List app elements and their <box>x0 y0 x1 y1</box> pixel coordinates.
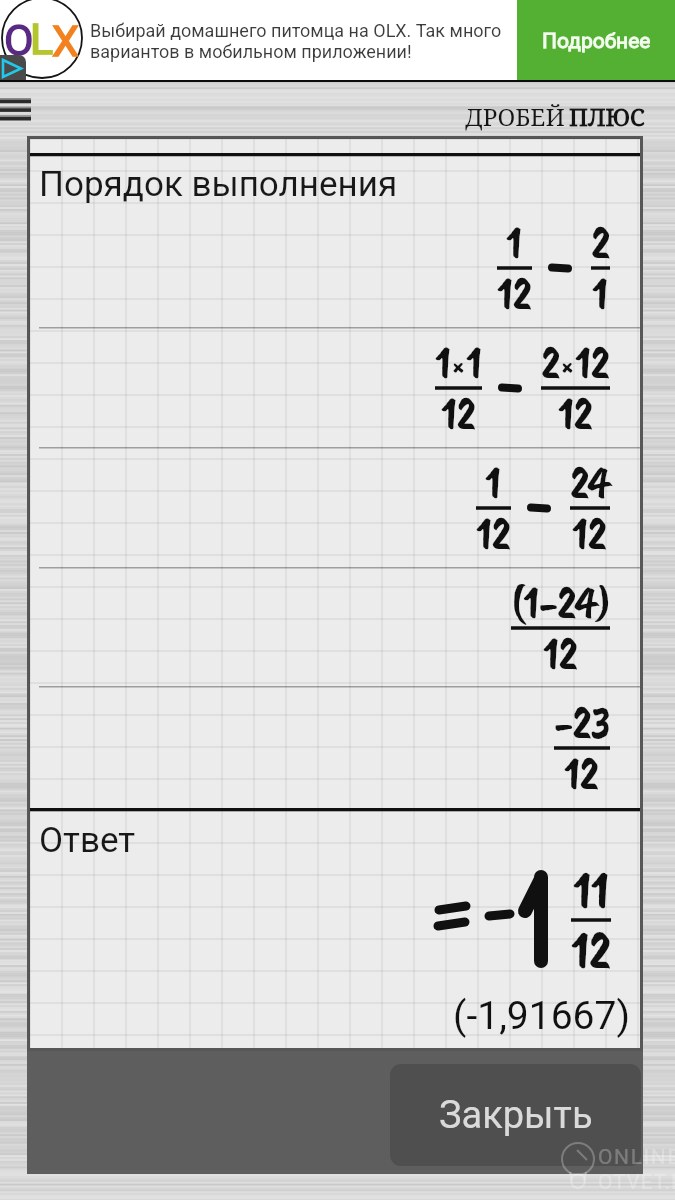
staticText: O <box>4 15 34 65</box>
staticText: 12 <box>497 264 532 323</box>
staticText: 1 <box>485 453 501 512</box>
staticText: × <box>451 348 466 384</box>
staticText: X <box>52 16 79 66</box>
staticText: (1-24) <box>511 573 610 632</box>
staticText: (-1,91667) <box>30 993 630 1039</box>
staticText: 2 <box>591 213 610 272</box>
staticText: 12 <box>558 384 593 443</box>
staticText: ПЛЮС <box>569 100 645 133</box>
staticText: ДРОБЕЙ <box>465 100 565 133</box>
staticText: × <box>560 348 575 384</box>
staticText: 12 <box>543 624 578 683</box>
staticText: 1 <box>592 264 608 323</box>
button[interactable]: Menu <box>0 82 44 136</box>
button[interactable]: Подробнее <box>517 0 675 82</box>
staticText: 12 <box>572 504 607 563</box>
staticText: 12 <box>564 744 599 803</box>
staticText: 1 <box>435 333 451 392</box>
staticText: OTVET.RU <box>598 1170 675 1195</box>
staticText: Закрыть <box>439 1093 593 1138</box>
staticText: ONLINE <box>598 1145 675 1170</box>
staticText: Ответ <box>39 820 136 861</box>
staticText: 12 <box>571 916 611 984</box>
staticText: 24 <box>570 453 610 512</box>
staticText: 1 <box>466 333 482 392</box>
staticText: 12 <box>476 504 511 563</box>
button[interactable]: O <box>0 0 675 82</box>
staticText: Порядок выполнения <box>39 164 398 205</box>
staticText: 2 <box>541 333 560 392</box>
staticText: Подробнее <box>542 29 651 54</box>
button[interactable]: Закрыть <box>390 1064 641 1166</box>
staticText: 12 <box>575 333 610 392</box>
staticText: 12 <box>441 384 476 443</box>
staticText: 11 <box>573 856 609 924</box>
staticText: L <box>30 14 54 64</box>
staticText: -23 <box>554 693 610 752</box>
staticText: 1 <box>506 213 522 272</box>
staticText: Выбирай домашнего питомца на OLX. Так мн… <box>90 20 502 63</box>
